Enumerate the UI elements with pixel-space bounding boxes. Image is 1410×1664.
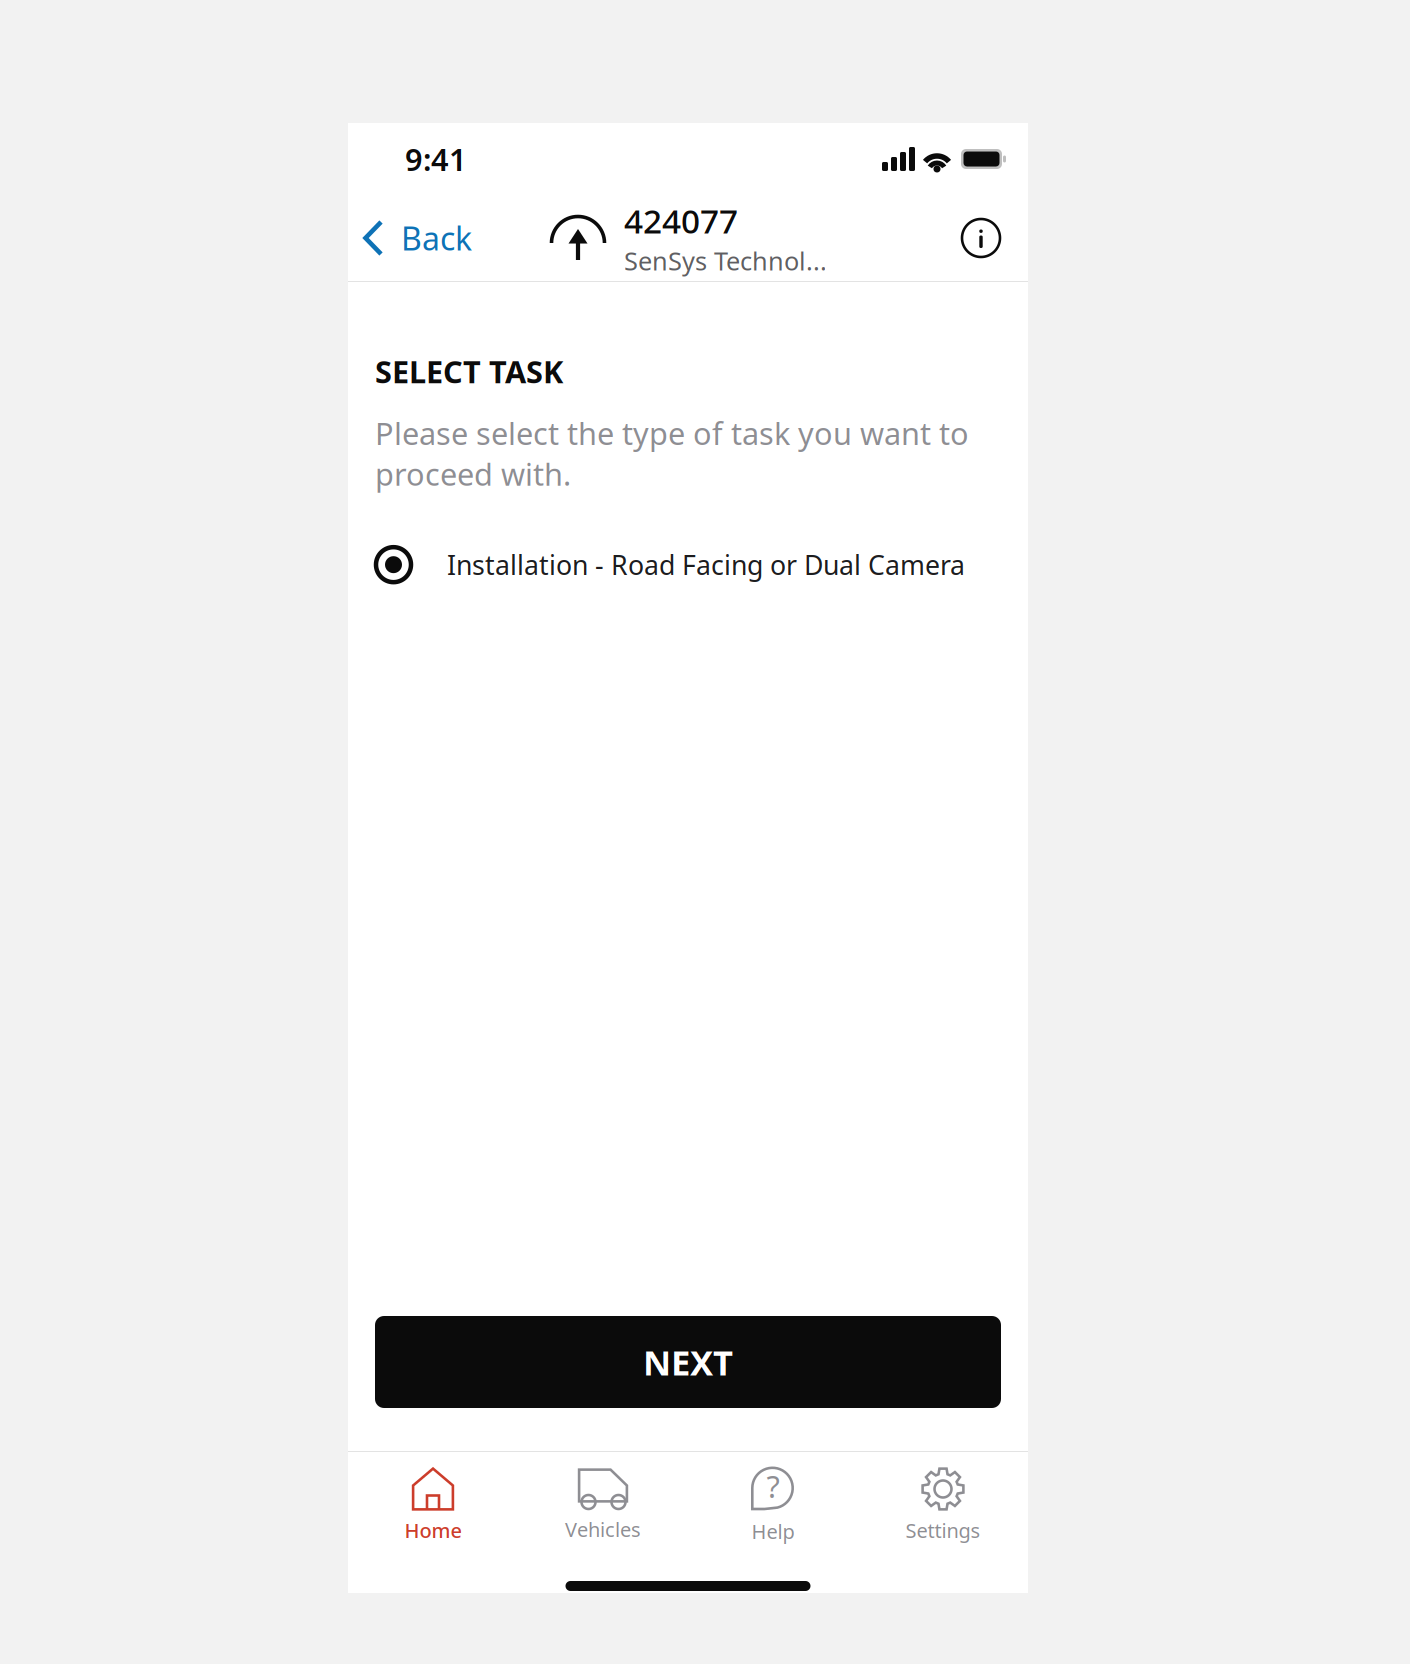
staticText: Vehicles: [565, 1516, 641, 1543]
staticText: 9:41: [405, 139, 467, 179]
button[interactable]: ?: [688, 1452, 858, 1555]
button[interactable]: Settings: [858, 1453, 1028, 1554]
button[interactable]: Installation - Road Facing or Dual Camer…: [375, 540, 1001, 589]
button[interactable]: Vehicles: [518, 1454, 688, 1553]
staticText: Please select the type of task you want …: [375, 413, 969, 494]
button[interactable]: Back: [348, 199, 484, 277]
button[interactable]: Home: [348, 1453, 518, 1554]
staticText: SELECT TASK: [375, 351, 563, 392]
staticText: Back: [401, 217, 472, 259]
button[interactable]: NEXT: [375, 1316, 1001, 1408]
staticText: SenSys Technol...: [624, 244, 827, 277]
staticText: NEXT: [643, 1339, 733, 1385]
staticText: Home: [404, 1517, 461, 1544]
staticText: Installation - Road Facing or Dual Camer…: [447, 547, 965, 582]
staticText: Help: [751, 1518, 794, 1545]
button[interactable]: Information: [950, 199, 1028, 277]
staticText: ?: [766, 1466, 779, 1506]
staticText: Settings: [905, 1517, 980, 1544]
staticText: 424077: [624, 198, 738, 243]
